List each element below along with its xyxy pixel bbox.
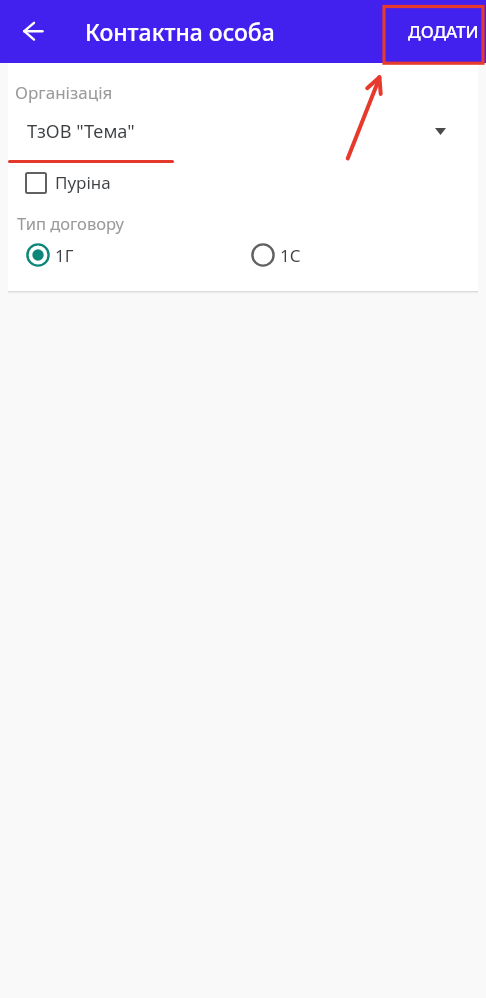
staticText: 1Г — [55, 244, 74, 267]
button[interactable]: Організація — [8, 69, 478, 164]
button[interactable]: Back — [13, 11, 55, 53]
button[interactable]: 1С — [249, 241, 303, 269]
button[interactable]: ДОДАТИ — [398, 12, 486, 51]
staticText: Організація — [15, 81, 113, 104]
staticText: Пуріна — [55, 171, 111, 194]
staticText: ТзОВ "Тема" — [27, 119, 135, 144]
staticText: ДОДАТИ — [408, 20, 479, 43]
staticText: 1С — [280, 244, 301, 267]
button[interactable]: Пуріна — [23, 169, 115, 196]
staticText: Контактна особа — [85, 16, 275, 47]
staticText: Тип договору — [17, 212, 124, 234]
button[interactable]: 1Г — [24, 241, 76, 269]
